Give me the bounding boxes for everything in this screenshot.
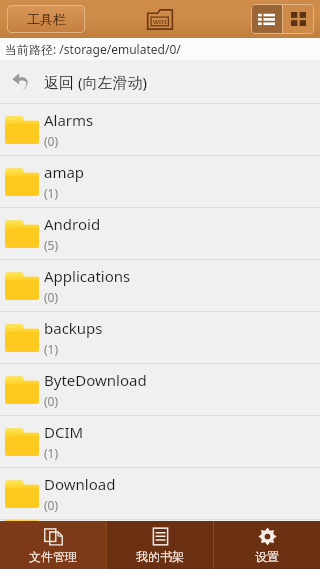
button[interactable]: WIFI 文件夹 <box>143 2 177 36</box>
staticText: 文件管理 <box>29 549 77 564</box>
staticText: (1) <box>44 341 59 357</box>
button[interactable]: 设置 <box>214 521 320 569</box>
button[interactable]: Applications <box>0 260 320 311</box>
staticText: 我的书架 <box>136 549 184 564</box>
staticText: DCIM <box>44 422 84 442</box>
button[interactable]: html2apk <box>0 520 320 521</box>
button[interactable]: 我的书架 <box>107 521 213 569</box>
button[interactable]: 列表视图 <box>251 4 282 34</box>
staticText: ByteDownload <box>44 370 147 390</box>
staticText: Alarms <box>44 110 94 130</box>
button[interactable]: 工具栏 <box>7 5 85 33</box>
staticText: (1) <box>44 185 59 201</box>
staticText: (0) <box>44 289 59 305</box>
staticText: 返回 (向左滑动) <box>44 72 147 92</box>
button[interactable]: backups <box>0 312 320 363</box>
staticText: Download <box>44 474 116 494</box>
staticText: (5) <box>44 237 59 253</box>
staticText: 工具栏 <box>27 11 66 27</box>
button[interactable]: Android <box>0 208 320 259</box>
button[interactable]: amap <box>0 156 320 207</box>
staticText: backups <box>44 318 103 338</box>
staticText: WIFI <box>153 18 167 26</box>
staticText: (0) <box>44 133 59 149</box>
staticText: Android <box>44 214 101 234</box>
button[interactable]: Alarms <box>0 104 320 155</box>
button[interactable]: 返回 (向左滑动) <box>0 60 320 103</box>
staticText: (0) <box>44 497 59 513</box>
staticText: (1) <box>44 445 59 461</box>
button[interactable]: ByteDownload <box>0 364 320 415</box>
button[interactable]: 网格视图 <box>283 4 314 34</box>
button[interactable]: Download <box>0 468 320 519</box>
button[interactable]: DCIM <box>0 416 320 467</box>
staticText: 当前路径: /storage/emulated/0/ <box>5 41 181 57</box>
staticText: (0) <box>44 393 59 409</box>
staticText: 设置 <box>255 549 279 564</box>
button[interactable]: 文件管理 <box>0 521 106 569</box>
staticText: Applications <box>44 266 131 286</box>
staticText: amap <box>44 162 85 182</box>
